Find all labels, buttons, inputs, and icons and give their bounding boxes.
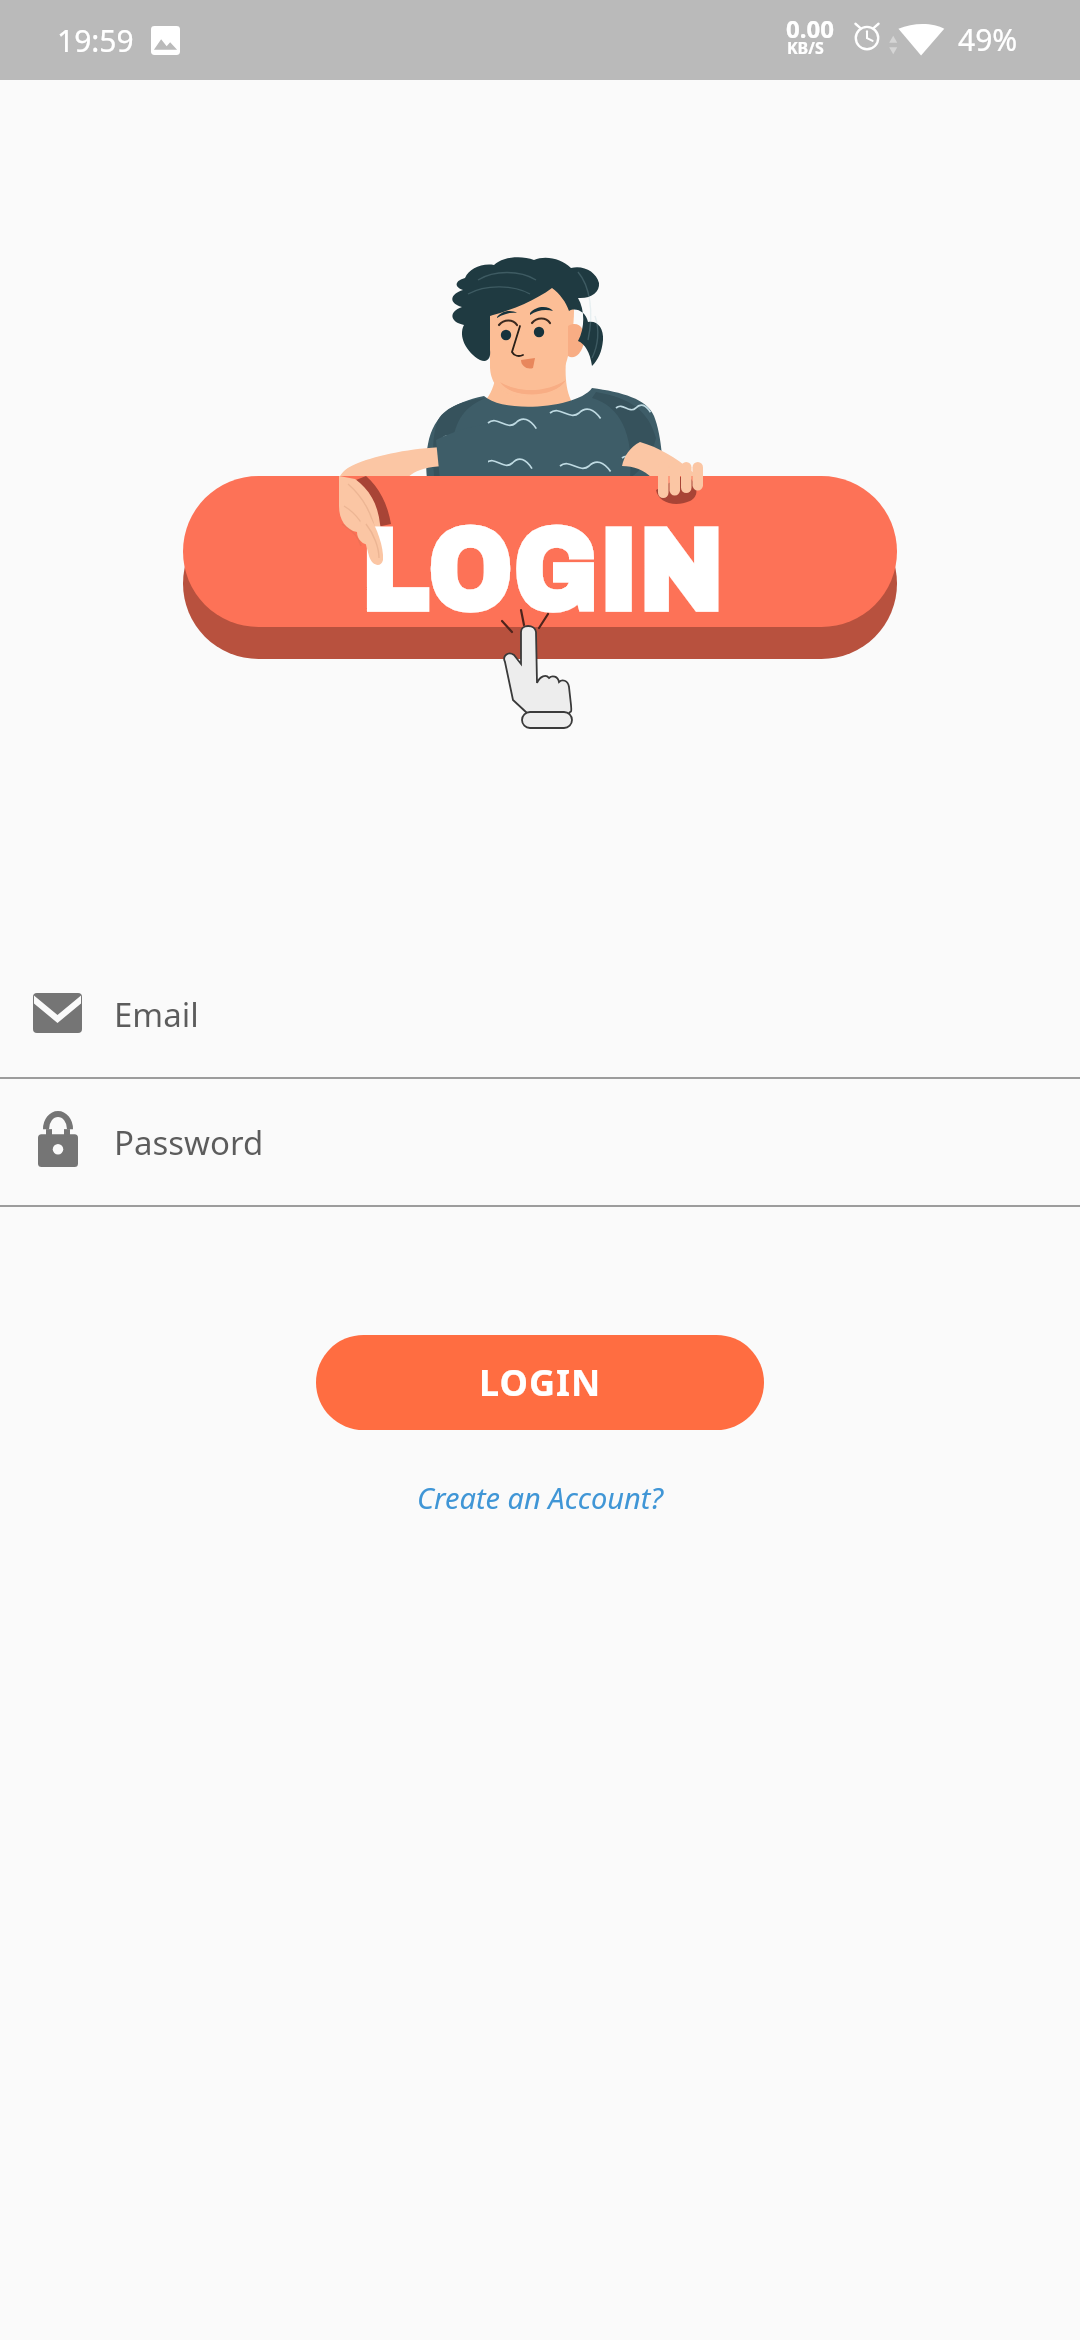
staticText: 0.00 (786, 12, 834, 45)
button[interactable]: Create an Account? (397, 1470, 683, 1525)
staticText: 49% (958, 19, 1018, 60)
staticText: KB/S (787, 37, 824, 59)
button[interactable]: Email (0, 951, 1080, 1079)
staticText: LOGIN (361, 506, 725, 634)
staticText: LOGIN (479, 1358, 602, 1407)
other: Alarm (850, 19, 884, 53)
staticText: 19:59 (57, 20, 134, 61)
other: Wi-Fi (888, 16, 946, 74)
button[interactable]: LOGIN (316, 1335, 764, 1430)
staticText: Password (114, 1120, 264, 1165)
staticText: Email (114, 992, 199, 1037)
staticText: Create an Account? (417, 1478, 663, 1517)
button[interactable]: Password (0, 1079, 1080, 1207)
